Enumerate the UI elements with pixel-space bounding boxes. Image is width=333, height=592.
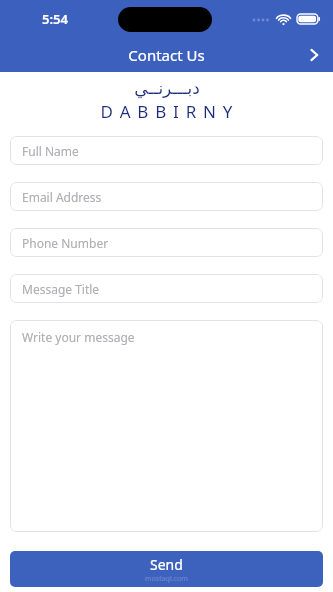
staticText: Message Title [22, 281, 100, 297]
staticText: Send [150, 555, 183, 574]
staticText: 5:54 [42, 10, 68, 28]
staticText: Write your message [22, 329, 135, 345]
button[interactable]: Full Name [10, 136, 323, 165]
staticText: دبـــرنــي [134, 78, 200, 98]
button[interactable]: Email Address [10, 182, 323, 211]
staticText: Email Address [22, 189, 102, 205]
staticText: Phone Number [22, 235, 109, 251]
button[interactable]: Send [10, 551, 323, 587]
staticText: Contact Us [128, 45, 205, 65]
button[interactable]: Next [295, 38, 333, 72]
staticText: D A B B I R N Y [100, 100, 234, 123]
staticText: Full Name [22, 143, 79, 159]
button[interactable]: Write your message [10, 320, 323, 532]
button[interactable]: Message Title [10, 274, 323, 303]
button[interactable]: Phone Number [10, 228, 323, 257]
staticText: mostaql.com [145, 574, 188, 584]
